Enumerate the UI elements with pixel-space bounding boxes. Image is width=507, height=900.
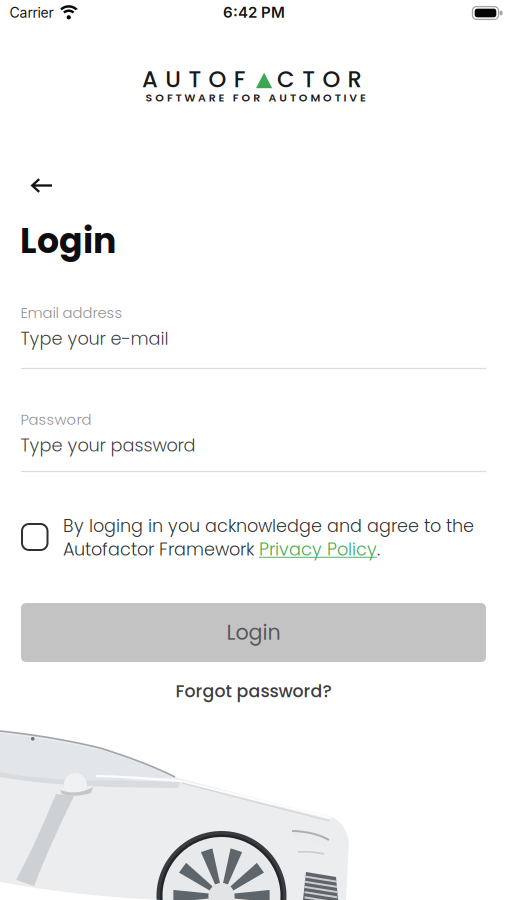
staticText: R <box>209 90 216 105</box>
staticText: Type your e-mail <box>20 326 168 351</box>
button[interactable]: Back <box>23 170 60 200</box>
staticText: O <box>209 63 227 95</box>
staticText: O <box>322 63 340 95</box>
staticText: O <box>299 90 308 105</box>
staticText: O <box>241 90 250 105</box>
staticText: T <box>302 63 315 95</box>
staticText: U <box>279 90 287 105</box>
staticText: Email address <box>20 302 122 323</box>
staticText: F <box>233 90 239 105</box>
staticText: R <box>253 90 260 105</box>
staticText: A <box>142 63 158 95</box>
staticText: . <box>377 537 380 562</box>
button[interactable]: Password, type your password <box>21 409 486 473</box>
staticText: Login <box>226 618 280 647</box>
staticText: By loging in you acknowledge and agree t… <box>63 513 474 538</box>
staticText: T <box>290 90 296 105</box>
button[interactable]: Login <box>21 603 486 662</box>
staticText: T <box>188 63 201 95</box>
staticText: C <box>277 63 295 95</box>
staticText: O <box>155 90 164 105</box>
staticText: A <box>269 90 277 105</box>
staticText: V <box>349 90 357 105</box>
staticText: R <box>348 63 362 95</box>
staticText: F <box>234 63 246 95</box>
staticText: Login <box>20 216 116 265</box>
staticText: W <box>184 90 195 105</box>
staticText: Password <box>20 409 91 430</box>
staticText: Autofactor Framework <box>63 537 259 562</box>
staticText: 6:42 PM <box>223 3 285 21</box>
staticText: I <box>343 90 346 105</box>
staticText: T <box>335 90 341 105</box>
staticText: E <box>218 90 224 105</box>
button[interactable]: Agree to Privacy Policy <box>22 524 47 550</box>
button[interactable]: Email address, type your e-mail <box>21 302 486 370</box>
staticText: S <box>145 90 152 105</box>
button[interactable]: Privacy Policy <box>259 537 377 562</box>
staticText: Type your password <box>20 433 195 458</box>
staticText: Carrier <box>9 4 53 21</box>
staticText: Privacy Policy <box>259 537 377 562</box>
staticText: M <box>310 90 320 105</box>
staticText: F <box>167 90 173 105</box>
staticText: O <box>323 90 332 105</box>
staticText: Forgot password? <box>175 679 331 703</box>
staticText: A <box>198 90 206 105</box>
staticText: U <box>165 63 181 95</box>
staticText: T <box>176 90 182 105</box>
staticText: E <box>360 90 366 105</box>
button[interactable]: Forgot password? <box>175 679 331 703</box>
